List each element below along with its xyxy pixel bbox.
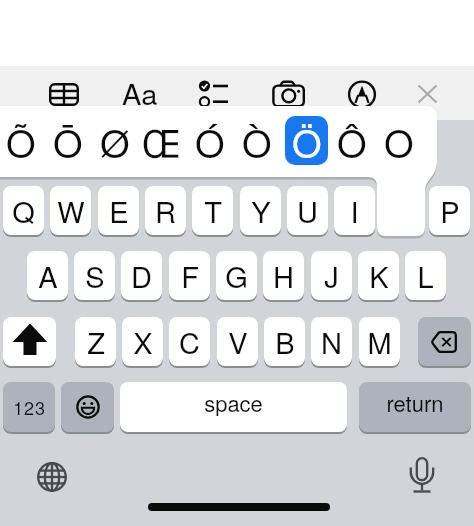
button[interactable]: V bbox=[217, 317, 258, 366]
button[interactable]: I bbox=[334, 186, 375, 235]
button[interactable]: Aa bbox=[116, 72, 164, 110]
button[interactable]: B bbox=[264, 317, 305, 366]
staticText: return bbox=[386, 387, 444, 419]
button[interactable]: L bbox=[405, 251, 446, 300]
staticText: D bbox=[131, 255, 152, 297]
button[interactable] bbox=[49, 83, 79, 106]
staticText: X bbox=[133, 321, 153, 363]
button[interactable]: Y bbox=[240, 186, 281, 235]
button[interactable] bbox=[3, 317, 56, 366]
staticText: Ø bbox=[100, 114, 130, 168]
button[interactable]: F bbox=[169, 251, 210, 300]
staticText: K bbox=[369, 255, 389, 297]
button[interactable] bbox=[197, 78, 231, 108]
staticText: B bbox=[275, 321, 295, 363]
staticText: Z bbox=[87, 321, 105, 363]
staticText: Ö bbox=[292, 114, 322, 168]
staticText: E bbox=[109, 190, 129, 232]
button[interactable]: A bbox=[27, 251, 68, 300]
button[interactable]: space bbox=[120, 382, 347, 432]
staticText: F bbox=[181, 255, 199, 297]
staticText: R bbox=[155, 190, 176, 232]
button[interactable] bbox=[348, 81, 376, 108]
staticText: U bbox=[297, 190, 318, 232]
staticText: M bbox=[367, 321, 392, 363]
button[interactable]: return bbox=[359, 382, 471, 432]
button[interactable]: U bbox=[287, 186, 328, 235]
button[interactable] bbox=[61, 382, 114, 432]
staticText: S bbox=[85, 255, 105, 297]
button[interactable]: Ø bbox=[91, 111, 138, 171]
staticText: L bbox=[417, 255, 434, 297]
staticText: Ó bbox=[195, 114, 225, 168]
button[interactable]: Ó bbox=[186, 111, 233, 171]
button[interactable] bbox=[37, 462, 67, 492]
button[interactable]: 123 bbox=[3, 382, 55, 432]
staticText: V bbox=[228, 321, 248, 363]
button[interactable]: G bbox=[216, 251, 257, 300]
staticText: Õ bbox=[6, 114, 36, 168]
staticText: H bbox=[273, 255, 294, 297]
button[interactable]: N bbox=[311, 317, 352, 366]
button[interactable]: S bbox=[74, 251, 115, 300]
button[interactable]: H bbox=[263, 251, 304, 300]
staticText: G bbox=[225, 255, 248, 297]
staticText: Œ bbox=[142, 114, 181, 168]
staticText: I bbox=[350, 190, 359, 232]
button[interactable] bbox=[285, 116, 328, 165]
button[interactable]: Ò bbox=[233, 111, 280, 171]
button[interactable]: P bbox=[429, 186, 470, 235]
button[interactable]: J bbox=[311, 251, 352, 300]
staticText: N bbox=[321, 321, 342, 363]
button[interactable]: Ō bbox=[44, 111, 91, 171]
button[interactable]: T bbox=[192, 186, 233, 235]
staticText: space bbox=[204, 387, 263, 419]
button[interactable]: W bbox=[50, 186, 91, 235]
staticText: W bbox=[57, 190, 85, 232]
staticText: Aa bbox=[122, 72, 158, 110]
button[interactable]: Ô bbox=[328, 111, 375, 171]
staticText: Y bbox=[251, 190, 271, 232]
button[interactable]: K bbox=[358, 251, 399, 300]
staticText: O bbox=[384, 114, 414, 168]
staticText: Ô bbox=[337, 114, 367, 168]
button[interactable]: X bbox=[122, 317, 163, 366]
button[interactable]: M bbox=[359, 317, 400, 366]
button[interactable]: Õ bbox=[0, 111, 44, 171]
staticText: T bbox=[204, 190, 222, 232]
staticText: Ō bbox=[53, 114, 83, 168]
button[interactable] bbox=[418, 317, 471, 366]
staticText: A bbox=[38, 255, 58, 297]
button[interactable]: C bbox=[169, 317, 210, 366]
button[interactable]: Œ bbox=[138, 111, 185, 171]
button[interactable] bbox=[417, 84, 438, 104]
staticText: P bbox=[440, 190, 460, 232]
staticText: 123 bbox=[13, 394, 46, 420]
button[interactable] bbox=[272, 80, 306, 108]
button[interactable]: Z bbox=[75, 317, 116, 366]
button[interactable]: D bbox=[121, 251, 162, 300]
button[interactable]: Q bbox=[3, 186, 44, 235]
button[interactable] bbox=[408, 457, 436, 495]
staticText: Q bbox=[12, 190, 35, 232]
button[interactable]: O bbox=[375, 111, 422, 171]
button[interactable]: R bbox=[145, 186, 186, 235]
button[interactable]: E bbox=[98, 186, 139, 235]
staticText: C bbox=[179, 321, 200, 363]
button[interactable]: Ö bbox=[283, 111, 330, 171]
staticText: J bbox=[324, 255, 339, 297]
staticText: Ò bbox=[242, 114, 272, 168]
